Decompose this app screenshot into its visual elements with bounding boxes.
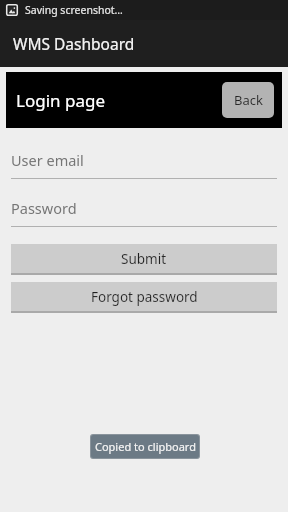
staticText: Copied to clipboard	[95, 439, 196, 454]
staticText: User email	[11, 150, 84, 170]
button[interactable]: Forgot password	[11, 282, 277, 313]
button[interactable]: Submit	[11, 244, 277, 275]
staticText: Forgot password	[91, 288, 198, 306]
staticText: Login page	[16, 89, 105, 112]
button[interactable]: Back	[222, 82, 274, 118]
button[interactable]: User email	[11, 141, 277, 179]
staticText: Back	[234, 91, 263, 109]
staticText: WMS Dashboard	[13, 33, 135, 54]
button[interactable]: Password	[11, 189, 277, 227]
staticText: Password	[11, 198, 77, 218]
staticText: Saving screenshot…	[25, 3, 123, 17]
staticText: Submit	[121, 250, 167, 268]
other: Screenshot	[6, 4, 18, 16]
